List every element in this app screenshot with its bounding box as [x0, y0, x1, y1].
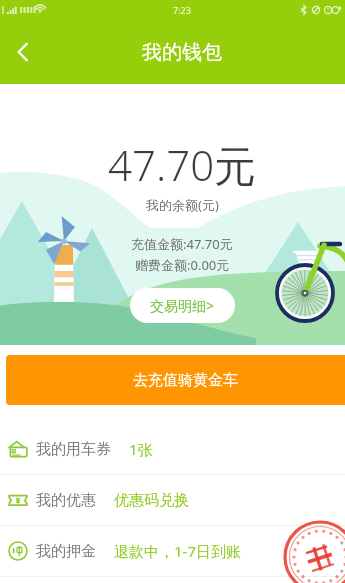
button[interactable]: 去充值骑黄金车 [6, 355, 345, 405]
button[interactable]: 我的用车券 [0, 424, 345, 474]
button[interactable]: Back [0, 29, 46, 75]
staticText: 我的钱包 [142, 40, 222, 65]
staticText: 充值金额:47.70元 [131, 235, 233, 253]
staticText: 我的优惠 [36, 491, 96, 510]
button[interactable]: 我的押金 [0, 526, 345, 576]
staticText: 我的余额(元) [146, 196, 219, 214]
staticText: 去充值骑黄金车 [133, 371, 238, 390]
staticText: 赠费金额:0.00元 [135, 256, 230, 274]
staticText: 7:23 [173, 4, 191, 16]
staticText: 优惠码兑换 [114, 491, 189, 510]
staticText: 我的用车券 [36, 440, 111, 459]
staticText: 我的押金 [36, 542, 96, 561]
staticText: 1张 [129, 439, 153, 459]
button[interactable]: 交易明细> [130, 288, 235, 323]
staticText: 退款中，1-7日到账 [114, 541, 241, 561]
button[interactable]: 我的优惠 [0, 475, 345, 525]
staticText: 交易明细> [150, 296, 215, 315]
staticText: 47.70元 [108, 136, 257, 193]
